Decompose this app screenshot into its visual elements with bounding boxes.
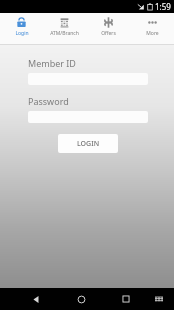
staticText: LOGIN	[77, 139, 100, 149]
button[interactable]: Back	[26, 289, 46, 309]
button[interactable]: Recent apps	[116, 289, 136, 309]
button[interactable]: ATM/Branch	[43, 13, 86, 44]
button[interactable]: Login	[0, 13, 43, 44]
button[interactable]: LOGIN	[58, 134, 118, 153]
staticText: Offers	[101, 30, 116, 37]
staticText: Login	[15, 30, 29, 37]
staticText: Member ID	[28, 57, 76, 69]
staticText: ATM/Branch	[50, 30, 79, 37]
button[interactable]: Keyboard	[150, 290, 168, 308]
staticText: Password	[28, 95, 69, 107]
button[interactable]: Offers	[86, 13, 130, 44]
button[interactable]: Home	[71, 289, 91, 309]
staticText: More	[146, 30, 159, 37]
button[interactable]: More	[130, 13, 174, 44]
staticText: 1:59	[155, 1, 171, 12]
